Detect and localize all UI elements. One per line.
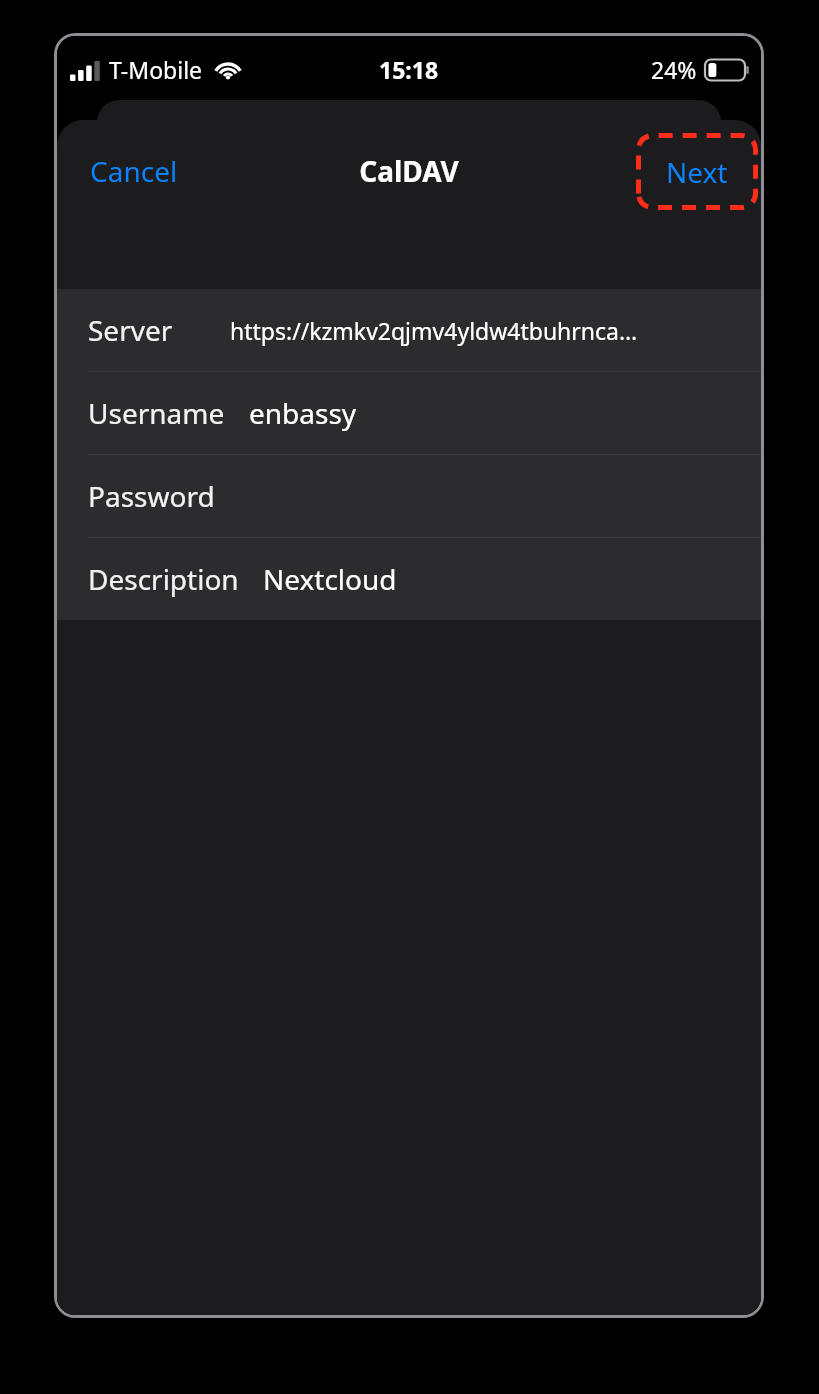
staticText: Next: [666, 153, 728, 191]
button[interactable]: Password: [57, 455, 761, 537]
staticText: Nextcloud: [263, 560, 397, 598]
staticText: Description: [88, 560, 239, 598]
button[interactable]: Next: [636, 133, 758, 210]
button[interactable]: Cancel: [77, 144, 191, 198]
staticText: https://kzmkv2qjmv4yldw4tbuhrnca…: [230, 315, 638, 346]
button[interactable]: Description: [57, 538, 761, 620]
staticText: Username: [88, 394, 225, 432]
staticText: 24%: [651, 54, 697, 85]
staticText: Cancel: [90, 152, 178, 190]
staticText: Password: [88, 477, 215, 515]
button[interactable]: Server: [57, 289, 761, 371]
staticText: Server: [88, 311, 173, 349]
staticText: enbassy: [249, 394, 357, 432]
staticText: CalDAV: [359, 152, 459, 190]
staticText: 15:18: [379, 54, 439, 85]
staticText: T-Mobile: [109, 54, 203, 85]
button[interactable]: Username: [57, 372, 761, 454]
